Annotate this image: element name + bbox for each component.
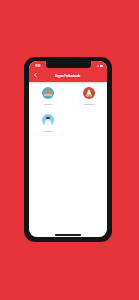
button[interactable]: Physics <box>31 84 64 109</box>
staticText: Chemistry <box>84 103 95 106</box>
staticText: 7:50 <box>35 64 41 68</box>
staticText: Degree Professionals <box>55 74 81 77</box>
button[interactable]: Chemistry <box>72 84 105 109</box>
button[interactable]: Back <box>29 69 41 81</box>
staticText: Physics <box>44 103 52 106</box>
staticText: Biology <box>44 130 53 133</box>
button[interactable]: Biology <box>31 111 64 136</box>
